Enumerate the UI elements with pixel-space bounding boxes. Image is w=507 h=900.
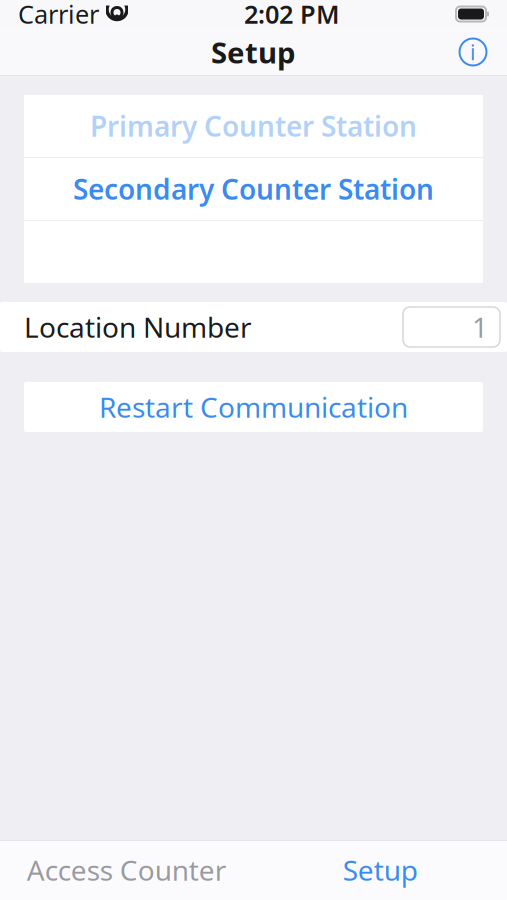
button[interactable]: Location Number: [0, 302, 507, 352]
staticText: Setup: [211, 32, 296, 71]
staticText: Restart Communication: [99, 388, 408, 426]
button[interactable]: Setup: [253, 840, 507, 900]
staticText: Setup: [343, 851, 418, 889]
staticText: 1: [472, 308, 488, 346]
button[interactable]: Secondary Counter Station: [24, 158, 483, 220]
button[interactable]: Primary Counter Station: [24, 95, 483, 157]
staticText: 2:02 PM: [244, 0, 340, 31]
staticText: Primary Counter Station: [90, 107, 417, 145]
button[interactable]: Restart Communication: [24, 382, 483, 432]
staticText: Carrier: [18, 0, 99, 31]
button[interactable]: Info: [451, 30, 495, 74]
button[interactable]: Access Counter: [0, 840, 253, 900]
staticText: Access Counter: [27, 851, 227, 889]
staticText: Secondary Counter Station: [73, 170, 434, 208]
staticText: i: [470, 38, 476, 66]
staticText: Location Number: [24, 308, 252, 346]
